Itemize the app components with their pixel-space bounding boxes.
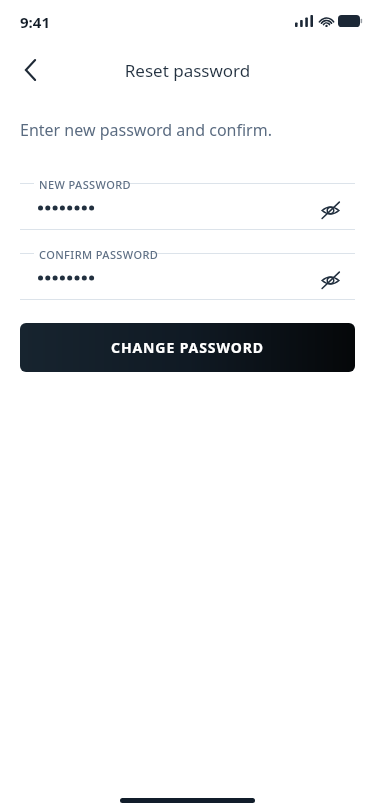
staticText: 9:41 [20,12,50,32]
staticText: CHANGE PASSWORD [111,338,264,357]
button[interactable]: CHANGE PASSWORD [20,323,355,372]
button[interactable]: Hide new password [310,190,350,230]
staticText: NEW PASSWORD [39,177,131,192]
staticText: Reset password [56,59,319,82]
staticText: Enter new password and confirm. [20,119,272,141]
button[interactable]: CONFIRM PASSWORD [20,253,355,300]
button[interactable]: NEW PASSWORD [20,183,355,230]
staticText: CONFIRM PASSWORD [39,247,159,262]
button[interactable]: Back [8,48,52,92]
button[interactable]: Hide confirm password [310,260,350,300]
